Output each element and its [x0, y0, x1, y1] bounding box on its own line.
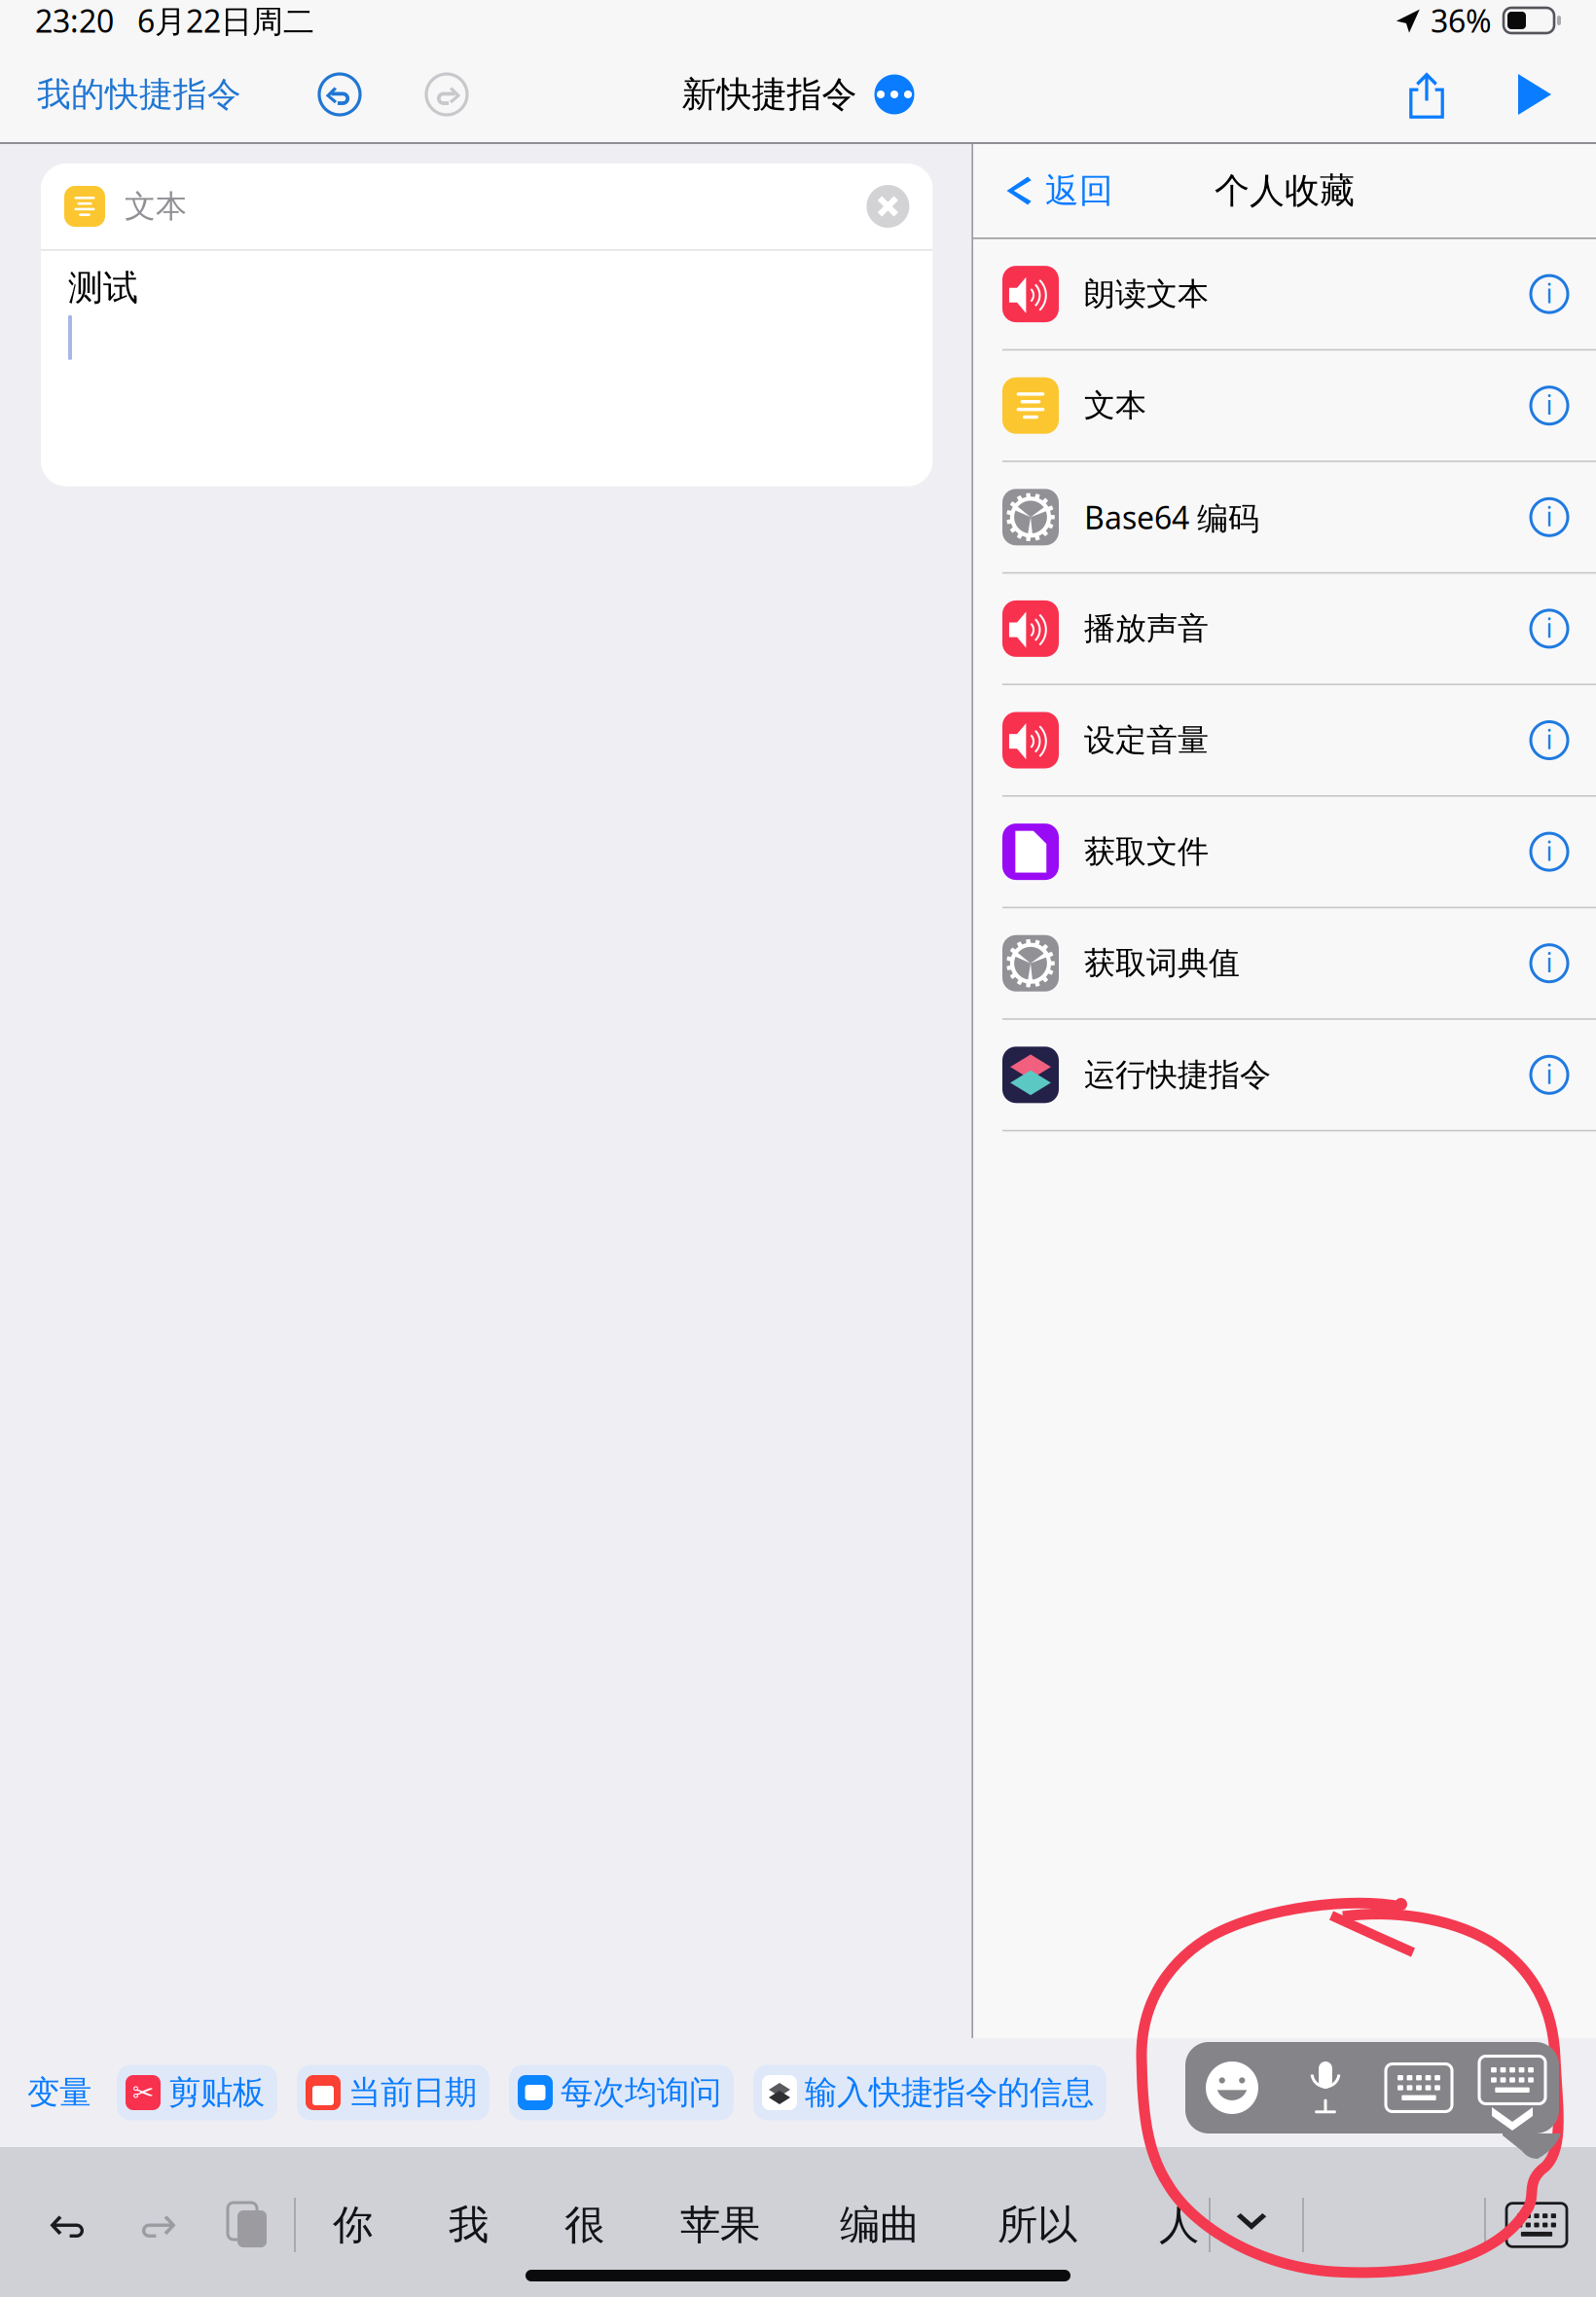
button[interactable]: 隐藏键盘 — [1486, 2167, 1596, 2283]
staticText: 你 — [333, 2200, 373, 2250]
button[interactable]: 展开 — [1211, 2167, 1292, 2283]
button[interactable]: 听写 — [1279, 2042, 1372, 2133]
button[interactable]: 撤销 — [251, 47, 383, 142]
button[interactable]: 编曲 — [760, 2167, 920, 2283]
button[interactable]: Base64 编码 — [973, 462, 1596, 574]
button[interactable]: 运行快捷指令 — [973, 1020, 1596, 1131]
staticText: i — [1546, 945, 1553, 980]
staticText: 获取文件 — [1084, 833, 1209, 871]
staticText: Base64 编码 — [1084, 496, 1259, 538]
staticText: ✂ — [132, 2078, 154, 2107]
staticText: 新快捷指令 — [682, 73, 857, 116]
button[interactable]: 我 — [373, 2167, 489, 2283]
staticText: 设定音量 — [1084, 721, 1209, 759]
staticText: 苹果 — [680, 2200, 760, 2250]
staticText: 播放声音 — [1084, 609, 1209, 648]
button[interactable]: 重做 — [383, 47, 487, 142]
button[interactable]: 停靠键盘 — [1466, 2042, 1559, 2133]
button[interactable]: 朗读文本 — [973, 239, 1596, 351]
staticText: 很 — [564, 2200, 604, 2250]
button[interactable]: 更多 — [857, 47, 914, 142]
button[interactable]: 撤销 — [37, 2167, 130, 2283]
button[interactable]: 拷贝 — [208, 2167, 290, 2283]
staticText: 返回 — [1045, 170, 1113, 211]
button[interactable]: 分享 — [1383, 47, 1480, 142]
staticText: i — [1546, 834, 1553, 868]
staticText: 所以 — [997, 2200, 1077, 2250]
staticText: 我 — [449, 2200, 489, 2250]
button[interactable]: 当前日期 — [277, 2065, 490, 2120]
button[interactable]: 设定音量 — [973, 685, 1596, 797]
staticText: i — [1546, 1057, 1553, 1091]
staticText: 运行快捷指令 — [1084, 1056, 1271, 1094]
button[interactable]: 播放声音 — [973, 574, 1596, 685]
staticText: 获取词典值 — [1084, 944, 1240, 982]
button[interactable]: 人 — [1077, 2167, 1199, 2283]
button[interactable]: 获取文件 — [973, 797, 1596, 908]
staticText: 编曲 — [840, 2200, 920, 2250]
staticText: 当前日期 — [348, 2073, 477, 2112]
button[interactable]: 你 — [296, 2167, 373, 2283]
staticText: 我的快捷指令 — [37, 74, 241, 115]
staticText: i — [1546, 276, 1553, 310]
staticText: 输入快捷指令的信息 — [805, 2073, 1094, 2112]
staticText: 变量 — [27, 2073, 91, 2112]
staticText: 朗读文本 — [1084, 275, 1209, 313]
staticText: 人 — [1159, 2200, 1199, 2250]
button[interactable]: 输入快捷指令的信息 — [734, 2065, 1106, 2120]
button[interactable]: 运行 — [1480, 47, 1596, 142]
button[interactable]: 变量 — [27, 2073, 97, 2112]
staticText: 6月22日周二 — [137, 0, 314, 41]
staticText: 文本 — [125, 187, 187, 225]
staticText: 每次均询问 — [561, 2073, 721, 2112]
button[interactable]: 返回 — [973, 144, 1127, 237]
button[interactable]: 很 — [489, 2167, 604, 2283]
button[interactable]: 所以 — [920, 2167, 1077, 2283]
button[interactable]: 苹果 — [604, 2167, 760, 2283]
staticText: 个人收藏 — [1215, 169, 1355, 212]
staticText: i — [1546, 722, 1553, 756]
button[interactable]: 重做 — [130, 2167, 208, 2283]
button[interactable]: 每次均询问 — [490, 2065, 734, 2120]
staticText: i — [1546, 610, 1553, 645]
button[interactable]: ✂ — [97, 2065, 277, 2120]
staticText: 36% — [1431, 0, 1492, 41]
staticText: 23:20 — [35, 0, 114, 41]
staticText: 文本 — [1084, 386, 1146, 425]
staticText: i — [1546, 387, 1553, 422]
button[interactable]: 文本 — [973, 351, 1596, 462]
staticText: 测试 — [68, 266, 138, 309]
button[interactable]: 表情符号 — [1185, 2042, 1279, 2133]
staticText: 剪贴板 — [168, 2073, 265, 2112]
button[interactable]: 我的快捷指令 — [0, 47, 251, 142]
button[interactable]: 键盘 — [1372, 2042, 1466, 2133]
staticText: i — [1546, 499, 1553, 533]
button[interactable]: 获取词典值 — [973, 908, 1596, 1020]
